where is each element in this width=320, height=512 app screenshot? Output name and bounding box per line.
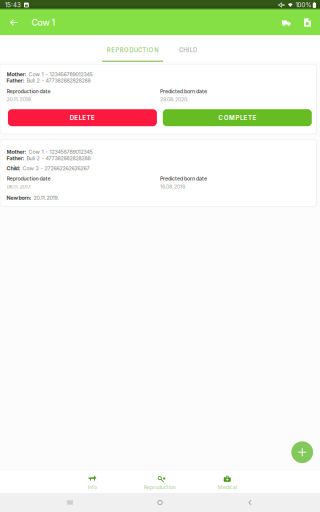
button[interactable]: COMPLETE: [163, 109, 312, 126]
button[interactable]: Reproduction: [126, 470, 193, 493]
staticText: Cow 3 - 272662262626267: [22, 165, 89, 172]
staticText: Cow 1 - 123456789012345: [28, 149, 92, 155]
button[interactable]: Add: [291, 441, 313, 463]
staticText: Reproduction date: [6, 88, 50, 95]
staticText: 29.08.2020.: [160, 96, 189, 103]
staticText: Newborn:: [6, 194, 31, 201]
button[interactable]: Medical: [193, 470, 261, 493]
button[interactable]: Back: [230, 493, 270, 512]
staticText: Cow 1: [31, 17, 55, 28]
staticText: Child:: [6, 165, 20, 172]
staticText: Father:: [6, 77, 24, 84]
staticText: 20.11.2019.: [33, 194, 59, 201]
button[interactable]: Back: [0, 10, 28, 35]
staticText: Father:: [6, 155, 24, 162]
staticText: COMPLETE: [218, 114, 256, 121]
staticText: Mother:: [6, 149, 26, 155]
staticText: Bull 2 - 477382882828288: [26, 77, 90, 84]
staticText: Info: [88, 484, 97, 490]
button[interactable]: Transport: [277, 10, 297, 35]
staticText: 15:43: [5, 1, 21, 9]
button[interactable]: Report: [297, 10, 317, 35]
staticText: 06.11.2017.: [6, 183, 31, 190]
staticText: 100%: [295, 1, 311, 9]
staticText: 16.08.2018.: [160, 183, 187, 190]
staticText: Cow 1 - 123456789012345: [28, 71, 92, 77]
staticText: Predicted born date: [160, 88, 207, 95]
staticText: Bull 2 - 477382882828288: [26, 155, 90, 162]
staticText: Reproduction date: [6, 175, 50, 182]
button[interactable]: Info: [58, 470, 126, 493]
staticText: 20.11.2019.: [6, 96, 32, 103]
button[interactable]: Recents: [50, 493, 90, 512]
staticText: Mother:: [6, 71, 26, 77]
button[interactable]: Home: [140, 493, 180, 512]
staticText: Reproduction: [144, 484, 176, 490]
button[interactable]: DELETE: [8, 109, 157, 126]
staticText: REPRODUCTION: [107, 46, 158, 54]
staticText: Predicted born date: [160, 175, 207, 182]
button[interactable]: REPRODUCTION: [96, 35, 169, 62]
staticText: CHILD: [179, 46, 197, 54]
button[interactable]: CHILD: [169, 35, 207, 62]
staticText: DELETE: [70, 114, 95, 121]
staticText: Medical: [218, 484, 237, 490]
